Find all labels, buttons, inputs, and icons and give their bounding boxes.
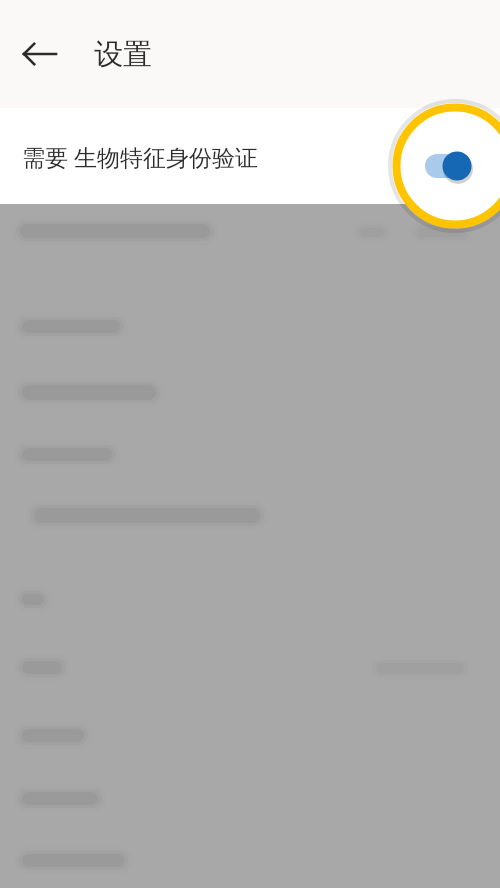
button[interactable]: 需要 生物特征身份验证	[0, 108, 500, 204]
button[interactable]: Back	[6, 20, 74, 88]
button[interactable]: 需要生物特征身份验证 开关	[418, 140, 486, 194]
staticText: 需要 生物特征身份验证	[22, 141, 258, 172]
staticText: 设置	[94, 36, 152, 73]
